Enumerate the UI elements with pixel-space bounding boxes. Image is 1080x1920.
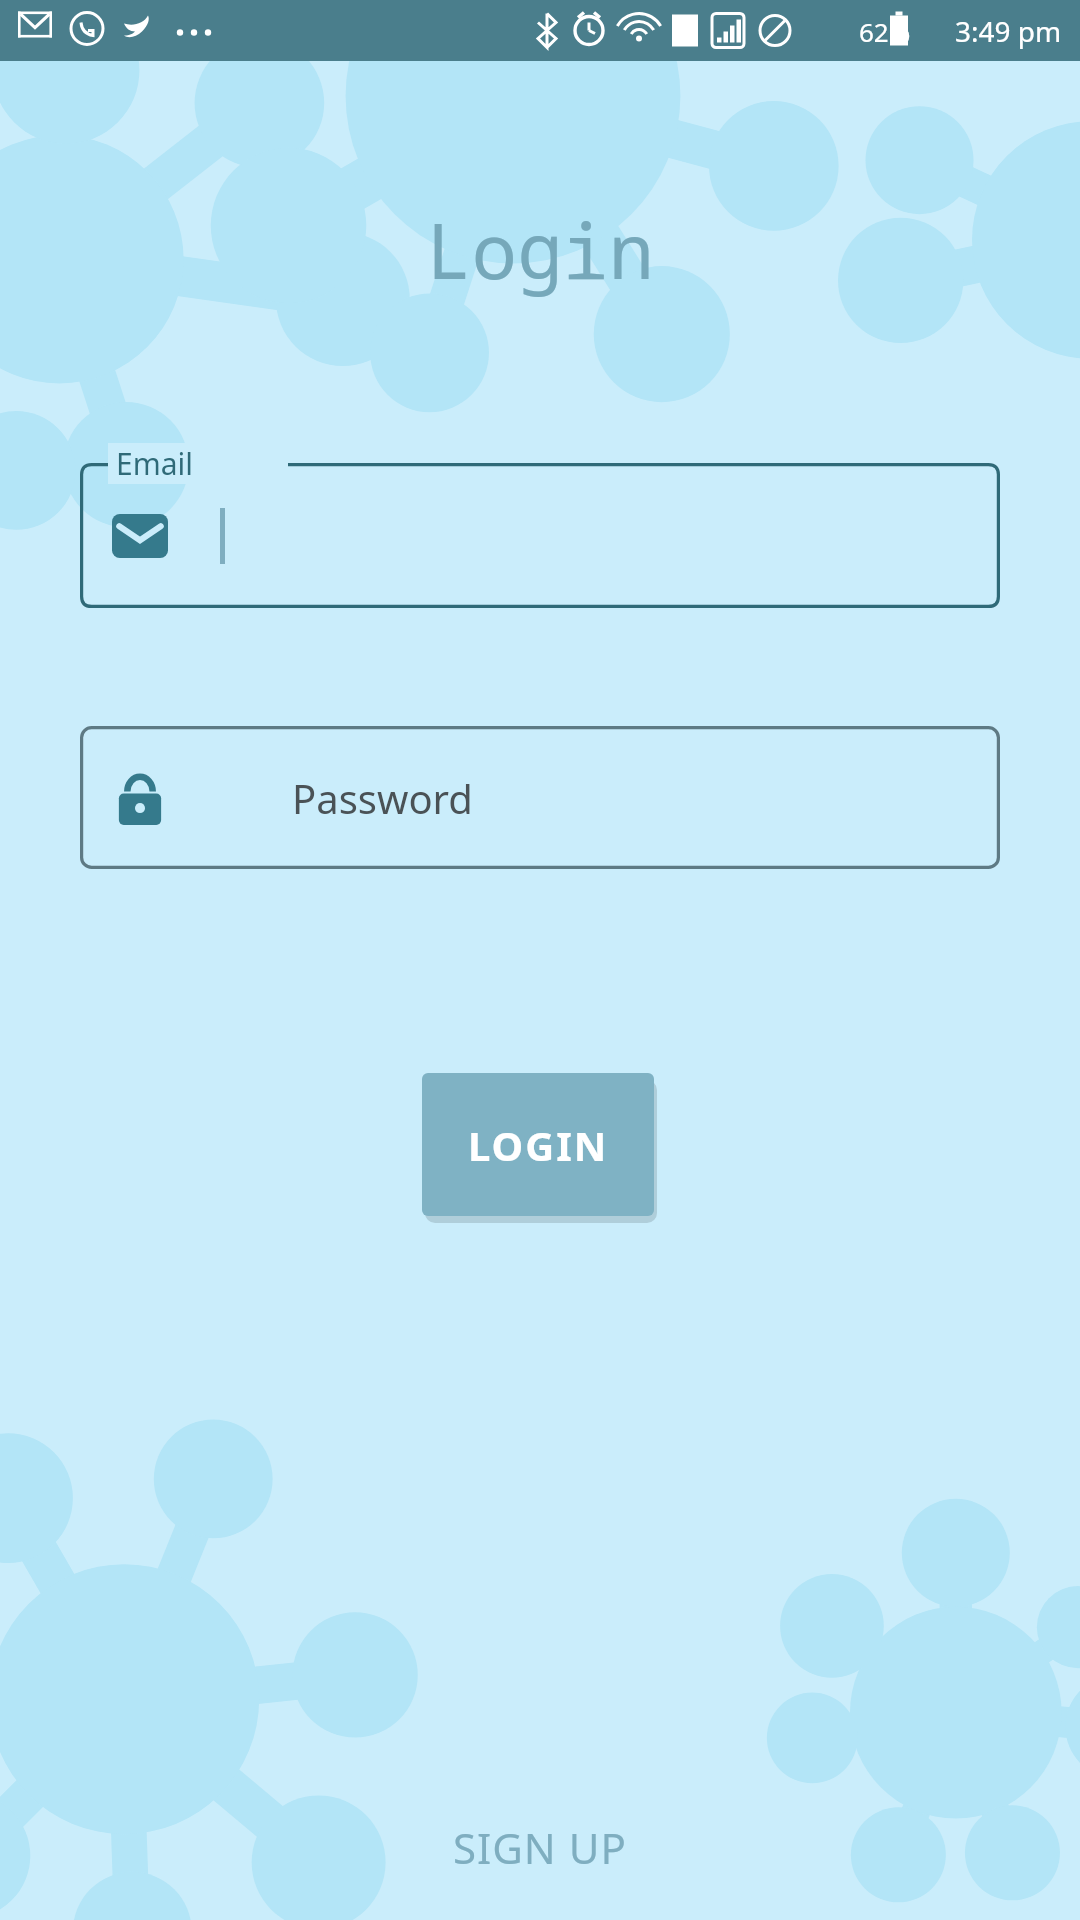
button[interactable]: SIGN UP bbox=[417, 1807, 663, 1888]
other: Password bbox=[116, 770, 164, 826]
button[interactable]: Password bbox=[80, 726, 1000, 869]
staticText: Password bbox=[292, 771, 473, 825]
button[interactable]: LOGIN bbox=[422, 1073, 654, 1216]
button[interactable]: Email bbox=[80, 463, 1000, 608]
staticText: 62% bbox=[859, 14, 911, 49]
staticText: Login bbox=[0, 198, 1080, 302]
staticText: LOGIN bbox=[468, 1118, 609, 1172]
staticText: Email bbox=[116, 443, 194, 484]
other: Email bbox=[112, 514, 168, 558]
staticText: 3:49 pm bbox=[955, 12, 1062, 50]
staticText: SIGN UP bbox=[453, 1819, 627, 1876]
